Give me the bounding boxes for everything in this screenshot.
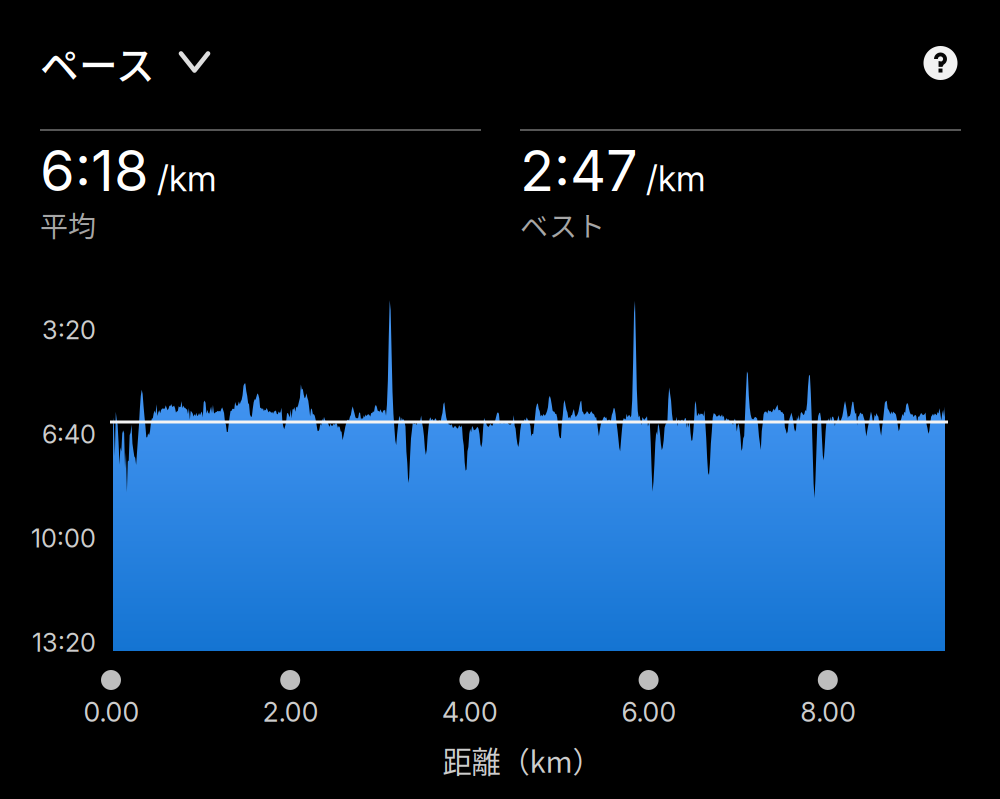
staticText: 13:20 <box>32 627 96 658</box>
staticText: 距離（km） <box>442 739 601 781</box>
staticText: 2.00 <box>263 696 319 728</box>
staticText: 6:18 <box>40 137 149 205</box>
staticText: 6:40 <box>42 419 96 450</box>
staticText: ペース <box>40 35 155 91</box>
staticText: /km <box>646 158 706 200</box>
staticText: 6.00 <box>622 696 677 728</box>
staticText: ベスト <box>520 205 605 245</box>
staticText: 2:47 <box>520 137 638 205</box>
staticText: 3:20 <box>42 315 96 345</box>
button[interactable]: ペース <box>40 29 208 97</box>
staticText: 10:00 <box>31 523 96 554</box>
staticText: 4.00 <box>442 696 498 728</box>
button[interactable]: ヘルプ <box>918 41 962 85</box>
staticText: /km <box>157 158 217 200</box>
staticText: 平均 <box>40 205 96 245</box>
staticText: 0.00 <box>83 696 139 728</box>
staticText: 8.00 <box>800 696 856 728</box>
